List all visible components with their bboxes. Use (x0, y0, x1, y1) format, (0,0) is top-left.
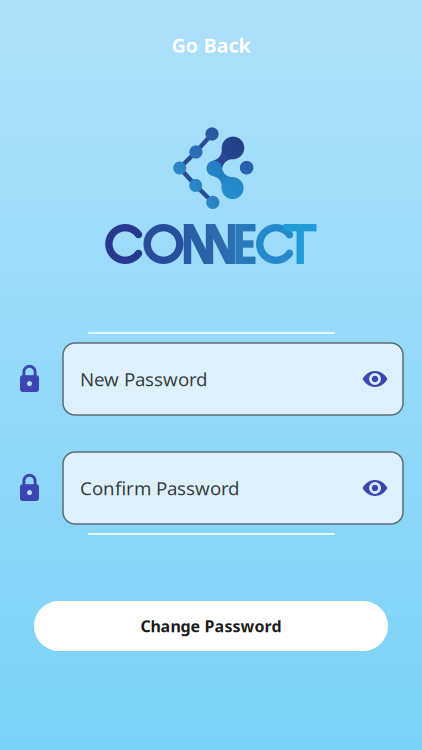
button[interactable]: Go Back (136, 26, 286, 64)
staticText: Change Password (140, 615, 281, 637)
button[interactable]: Change Password (34, 601, 388, 651)
staticText: Go Back (171, 32, 250, 58)
button[interactable]: Show Confirm Password (357, 470, 393, 506)
staticText: Confirm Password (80, 476, 239, 500)
button[interactable]: Show New Password (357, 361, 393, 397)
staticText: New Password (80, 367, 207, 391)
